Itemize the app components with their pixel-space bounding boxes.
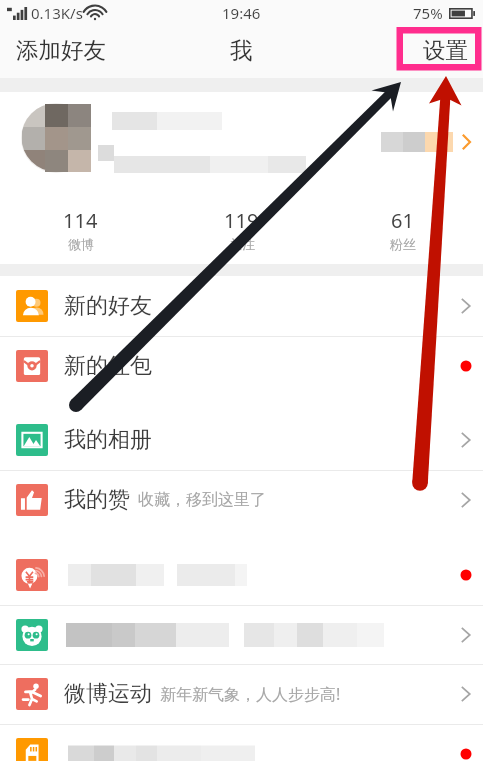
staticText: 收藏，移到这里了 xyxy=(138,490,266,510)
button[interactable]: 设置 xyxy=(413,24,478,76)
staticText: 75% xyxy=(413,3,443,23)
staticText: 新的红包 xyxy=(64,352,152,380)
button[interactable] xyxy=(0,545,483,605)
staticText: 微博运动 xyxy=(64,680,152,708)
staticText: 粉丝 xyxy=(390,236,416,252)
staticText: 设置 xyxy=(423,36,468,64)
button[interactable]: 61 xyxy=(322,205,483,254)
button[interactable]: 114 xyxy=(0,205,161,254)
button[interactable]: 我的相册 xyxy=(0,410,483,470)
staticText: 19:46 xyxy=(222,3,261,23)
staticText: 新的好友 xyxy=(64,292,152,320)
button[interactable]: 119 xyxy=(161,205,322,254)
button[interactable]: Profile photo xyxy=(21,103,91,173)
staticText: 添加好友 xyxy=(16,36,106,64)
staticText: 0.13K/s xyxy=(31,3,83,23)
button[interactable]: 新的红包 xyxy=(0,336,483,396)
staticText: 119 xyxy=(224,207,259,234)
staticText: 61 xyxy=(391,207,414,234)
staticText: 114 xyxy=(63,207,98,234)
staticText: 微博 xyxy=(68,236,94,252)
staticText: 新年新气象，人人步步高! xyxy=(160,683,341,705)
staticText: 关注 xyxy=(229,236,255,252)
button[interactable] xyxy=(0,724,483,761)
button[interactable] xyxy=(0,605,483,665)
button[interactable]: 我的赞 xyxy=(0,470,483,530)
staticText: 我的相册 xyxy=(64,426,152,454)
button[interactable]: 新的好友 xyxy=(0,276,483,336)
staticText: 我 xyxy=(230,36,253,64)
button[interactable]: 微博运动 xyxy=(0,664,483,724)
button[interactable]: 添加好友 xyxy=(6,24,116,76)
button[interactable]: VIP level xyxy=(381,132,471,152)
staticText: 我的赞 xyxy=(64,486,130,514)
